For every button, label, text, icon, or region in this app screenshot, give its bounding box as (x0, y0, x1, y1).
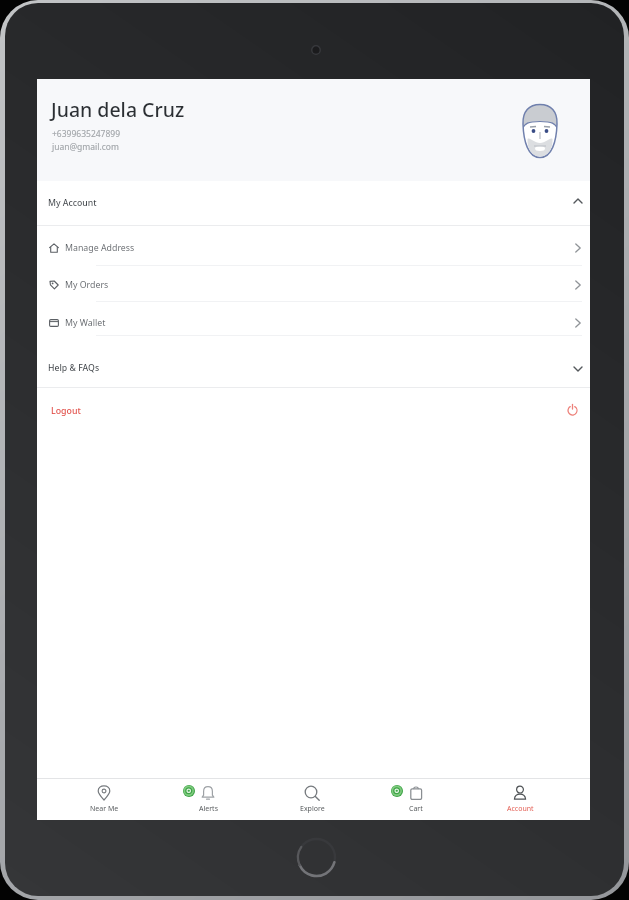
button[interactable]: Help & FAQs (37, 335, 590, 387)
staticText: My Orders (65, 279, 109, 291)
button[interactable]: My Wallet (37, 301, 590, 336)
button[interactable]: Manage Address (37, 225, 590, 265)
button[interactable]: Logout (37, 387, 590, 437)
button[interactable]: My Orders (37, 265, 590, 301)
staticText: Explore (300, 804, 325, 814)
staticText: Juan dela Cruz (51, 96, 185, 123)
staticText: Near Me (90, 804, 119, 814)
button[interactable]: Alerts (156, 785, 260, 814)
staticText: Manage Address (65, 242, 135, 254)
staticText: My Wallet (65, 317, 106, 329)
button[interactable]: Account (468, 785, 572, 814)
button[interactable]: Cart (364, 785, 468, 814)
staticText: Account (507, 804, 534, 814)
button[interactable]: My Account (37, 181, 590, 225)
staticText: Cart (409, 804, 423, 814)
button[interactable]: Explore (260, 785, 364, 814)
staticText: My Account (48, 197, 97, 209)
staticText: Logout (51, 405, 81, 417)
staticText: Help & FAQs (48, 362, 100, 374)
button[interactable]: Near Me (52, 785, 156, 814)
staticText: +6399635247899 (52, 128, 121, 140)
staticText: Alerts (199, 804, 218, 814)
staticText: juan@gmail.com (52, 141, 119, 153)
